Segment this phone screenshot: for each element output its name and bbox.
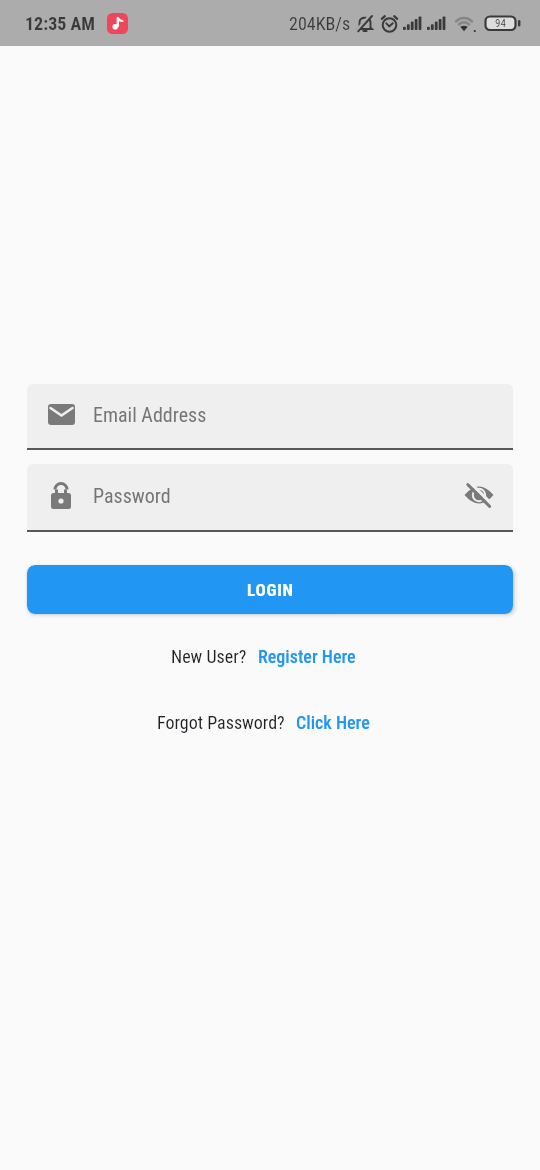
button[interactable]: Register Here — [258, 646, 356, 667]
staticText: Email Address — [93, 403, 207, 426]
staticText: LOGIN — [247, 580, 294, 600]
button[interactable]: Email Address — [27, 384, 513, 450]
staticText: Forgot Password? — [157, 712, 285, 733]
staticText: 12:35 AM — [25, 13, 95, 34]
staticText: Register Here — [258, 646, 356, 667]
staticText: Password — [93, 484, 171, 507]
button[interactable]: LOGIN — [27, 565, 513, 614]
staticText: 94 — [495, 17, 506, 30]
button[interactable]: Click Here — [296, 712, 370, 733]
staticText: New User? — [171, 646, 247, 667]
button[interactable]: Password — [27, 464, 513, 532]
staticText: 204KB/s — [289, 13, 351, 34]
staticText: Click Here — [296, 712, 370, 733]
